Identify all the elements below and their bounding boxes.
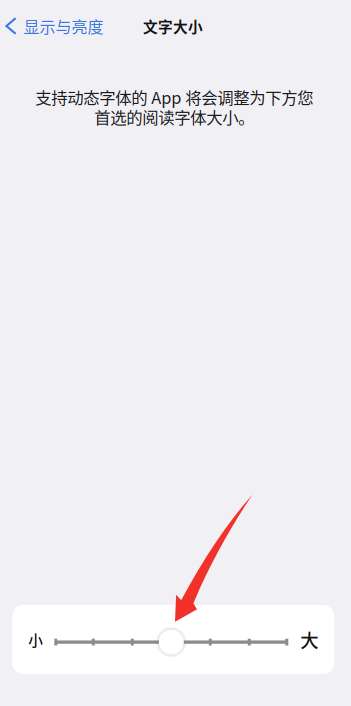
button[interactable]: 显示与亮度: [0, 6, 111, 46]
staticText: 显示与亮度: [23, 14, 103, 38]
staticText: 文字大小: [143, 15, 203, 37]
staticText: 小: [28, 629, 43, 650]
staticText: 支持动态字体的 App 将会调整为下方您首选的阅读字体大小。: [35, 87, 313, 126]
staticText: 大: [300, 626, 318, 653]
